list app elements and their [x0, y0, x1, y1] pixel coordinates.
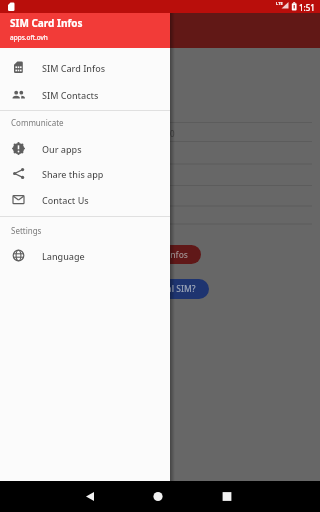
- staticText: Language: [42, 250, 85, 262]
- button[interactable]: SIM Card Infos: [0, 54, 170, 81]
- staticText: Share this app: [42, 168, 104, 180]
- staticText: 1:51: [299, 2, 315, 13]
- staticText: Refresh Infos: [134, 249, 188, 261]
- button[interactable]: [76, 483, 104, 510]
- button[interactable]: Contact Us: [0, 186, 170, 213]
- button[interactable]: Refresh Infos: [120, 245, 201, 264]
- staticText: Settings: [11, 225, 42, 236]
- staticText: Communicate: [11, 117, 64, 128]
- staticText: LTE: [276, 1, 283, 6]
- button[interactable]: [213, 483, 241, 510]
- button[interactable]: [144, 483, 172, 510]
- button[interactable]: Language: [0, 242, 170, 269]
- staticText: SIM Card Infos: [10, 16, 83, 30]
- staticText: SIM Card Infos: [42, 62, 106, 74]
- staticText: apps.oft.ovh: [10, 33, 48, 42]
- button[interactable]: Our apps: [0, 135, 170, 162]
- staticText: What is Dual SIM?: [123, 283, 196, 295]
- button[interactable]: SIM Contacts: [0, 81, 170, 108]
- staticText: 0: [170, 128, 175, 139]
- button[interactable]: Share this app: [0, 160, 170, 187]
- staticText: Our apps: [42, 143, 82, 155]
- staticText: SIM Contacts: [42, 89, 99, 101]
- staticText: Contact Us: [42, 194, 89, 206]
- button[interactable]: What is Dual SIM?: [110, 279, 209, 299]
